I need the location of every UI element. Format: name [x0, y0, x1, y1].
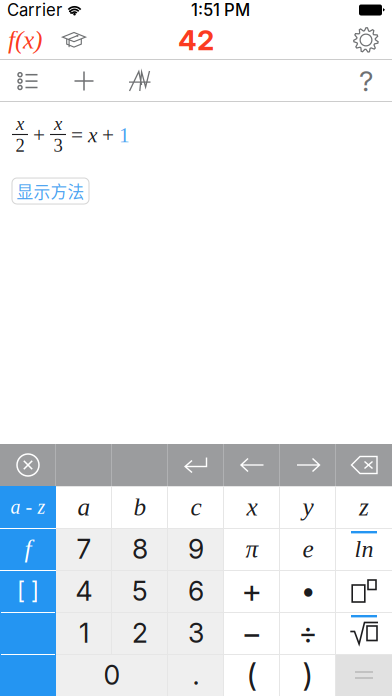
button[interactable]: Variables: [112, 60, 168, 102]
staticText: 1:51 PM: [191, 0, 250, 20]
staticText: 5: [132, 575, 148, 607]
staticText: 42: [178, 23, 214, 57]
button[interactable]: x: [224, 486, 280, 528]
button[interactable]: π: [224, 528, 280, 570]
button[interactable]: More: [0, 654, 56, 696]
staticText: π: [245, 535, 258, 563]
staticText: ln: [354, 536, 373, 562]
button[interactable]: New problem: [56, 60, 112, 102]
button[interactable]: .: [168, 654, 224, 696]
staticText: =: [71, 123, 83, 147]
button[interactable]: ln: [336, 528, 392, 570]
button[interactable]: (: [224, 654, 280, 696]
button[interactable]: c: [168, 486, 224, 528]
staticText: +: [102, 123, 114, 147]
button[interactable]: ÷: [280, 612, 336, 654]
staticText: x: [54, 113, 62, 134]
button[interactable]: •: [280, 570, 336, 612]
staticText: 9: [188, 533, 204, 565]
button[interactable]: y: [280, 486, 336, 528]
button[interactable]: 7: [56, 528, 112, 570]
staticText: .: [192, 659, 199, 691]
button[interactable]: [ ]: [0, 570, 56, 612]
staticText: z: [359, 493, 369, 521]
staticText: 显示方法: [16, 179, 84, 203]
button[interactable]: Tutorials: [50, 20, 98, 60]
button[interactable]: Square root: [336, 612, 392, 654]
button[interactable]: Shift: [0, 612, 56, 654]
button[interactable]: 5: [112, 570, 168, 612]
staticText: c: [190, 493, 201, 521]
staticText: 0: [103, 659, 120, 691]
button[interactable]: 6: [168, 570, 224, 612]
button[interactable]: +: [224, 570, 280, 612]
button[interactable]: a: [56, 486, 112, 528]
staticText: •: [301, 575, 315, 607]
button[interactable]: Help: [340, 60, 392, 102]
staticText: ): [302, 656, 313, 694]
staticText: 1: [119, 123, 130, 147]
button[interactable]: 1: [56, 612, 112, 654]
staticText: +: [33, 123, 45, 147]
staticText: a: [77, 493, 90, 521]
button[interactable]: 4: [56, 570, 112, 612]
button[interactable]: Functions: [0, 20, 50, 60]
staticText: e: [302, 535, 313, 563]
button[interactable]: −: [224, 612, 280, 654]
button[interactable]: ): [280, 654, 336, 696]
staticText: x: [246, 493, 257, 521]
staticText: ÷: [298, 615, 317, 651]
button[interactable]: e: [280, 528, 336, 570]
staticText: x: [16, 113, 24, 134]
button[interactable]: Problem list: [0, 60, 56, 102]
staticText: 6: [188, 575, 204, 607]
staticText: (: [246, 656, 257, 694]
button[interactable]: Settings: [340, 20, 392, 60]
staticText: a - z: [10, 496, 45, 518]
button[interactable]: 显示方法: [12, 178, 89, 204]
button[interactable]: 8: [112, 528, 168, 570]
staticText: 2: [15, 135, 24, 156]
button[interactable]: Enter: [168, 444, 224, 486]
button[interactable]: Move right: [280, 444, 336, 486]
staticText: 3: [53, 135, 62, 156]
staticText: b: [133, 493, 146, 521]
button[interactable]: Power: [336, 570, 392, 612]
staticText: −: [241, 614, 262, 652]
button[interactable]: f: [0, 528, 56, 570]
button[interactable]: Move left: [224, 444, 280, 486]
staticText: y: [302, 493, 313, 521]
button[interactable]: 9: [168, 528, 224, 570]
staticText: 2: [132, 617, 148, 649]
button[interactable]: 3: [168, 612, 224, 654]
button[interactable]: z: [336, 486, 392, 528]
button[interactable]: Close keyboard: [0, 444, 56, 486]
button[interactable]: a - z: [0, 486, 56, 528]
staticText: 8: [132, 533, 148, 565]
staticText: 1: [79, 617, 89, 649]
staticText: f: [24, 535, 31, 563]
button[interactable]: Equals: [336, 654, 392, 696]
staticText: 4: [75, 575, 92, 607]
staticText: x: [88, 123, 97, 147]
staticText: [ ]: [17, 577, 39, 605]
button[interactable]: 2: [112, 612, 168, 654]
staticText: 3: [188, 617, 204, 649]
staticText: +: [241, 572, 262, 610]
staticText: 7: [76, 533, 91, 565]
button[interactable]: Delete: [336, 444, 392, 486]
staticText: Carrier: [7, 0, 62, 20]
staticText: ?: [359, 64, 373, 98]
staticText: f(x): [8, 26, 42, 54]
button[interactable]: 0: [56, 654, 168, 696]
button[interactable]: b: [112, 486, 168, 528]
